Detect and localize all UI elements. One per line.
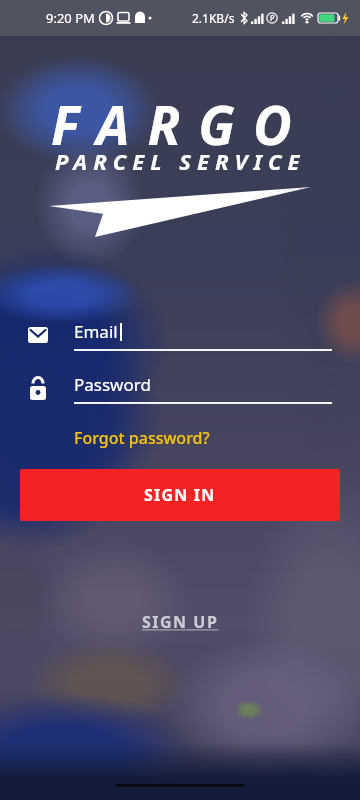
button[interactable]: Password [28, 371, 332, 405]
staticText: 9:20 PM [46, 9, 95, 27]
staticText: PARCEL SERVICE [55, 146, 306, 176]
button[interactable]: SIGN UP [142, 611, 219, 633]
button[interactable]: Email [28, 318, 332, 352]
staticText: Email [74, 320, 118, 343]
staticText: FARGO [51, 88, 310, 160]
staticText: Password [74, 373, 151, 396]
staticText: SIGN IN [144, 484, 216, 506]
button[interactable]: SIGN IN [20, 469, 340, 521]
staticText: 2.1KB/s [192, 10, 235, 26]
button[interactable]: Forgot password? [74, 427, 210, 449]
